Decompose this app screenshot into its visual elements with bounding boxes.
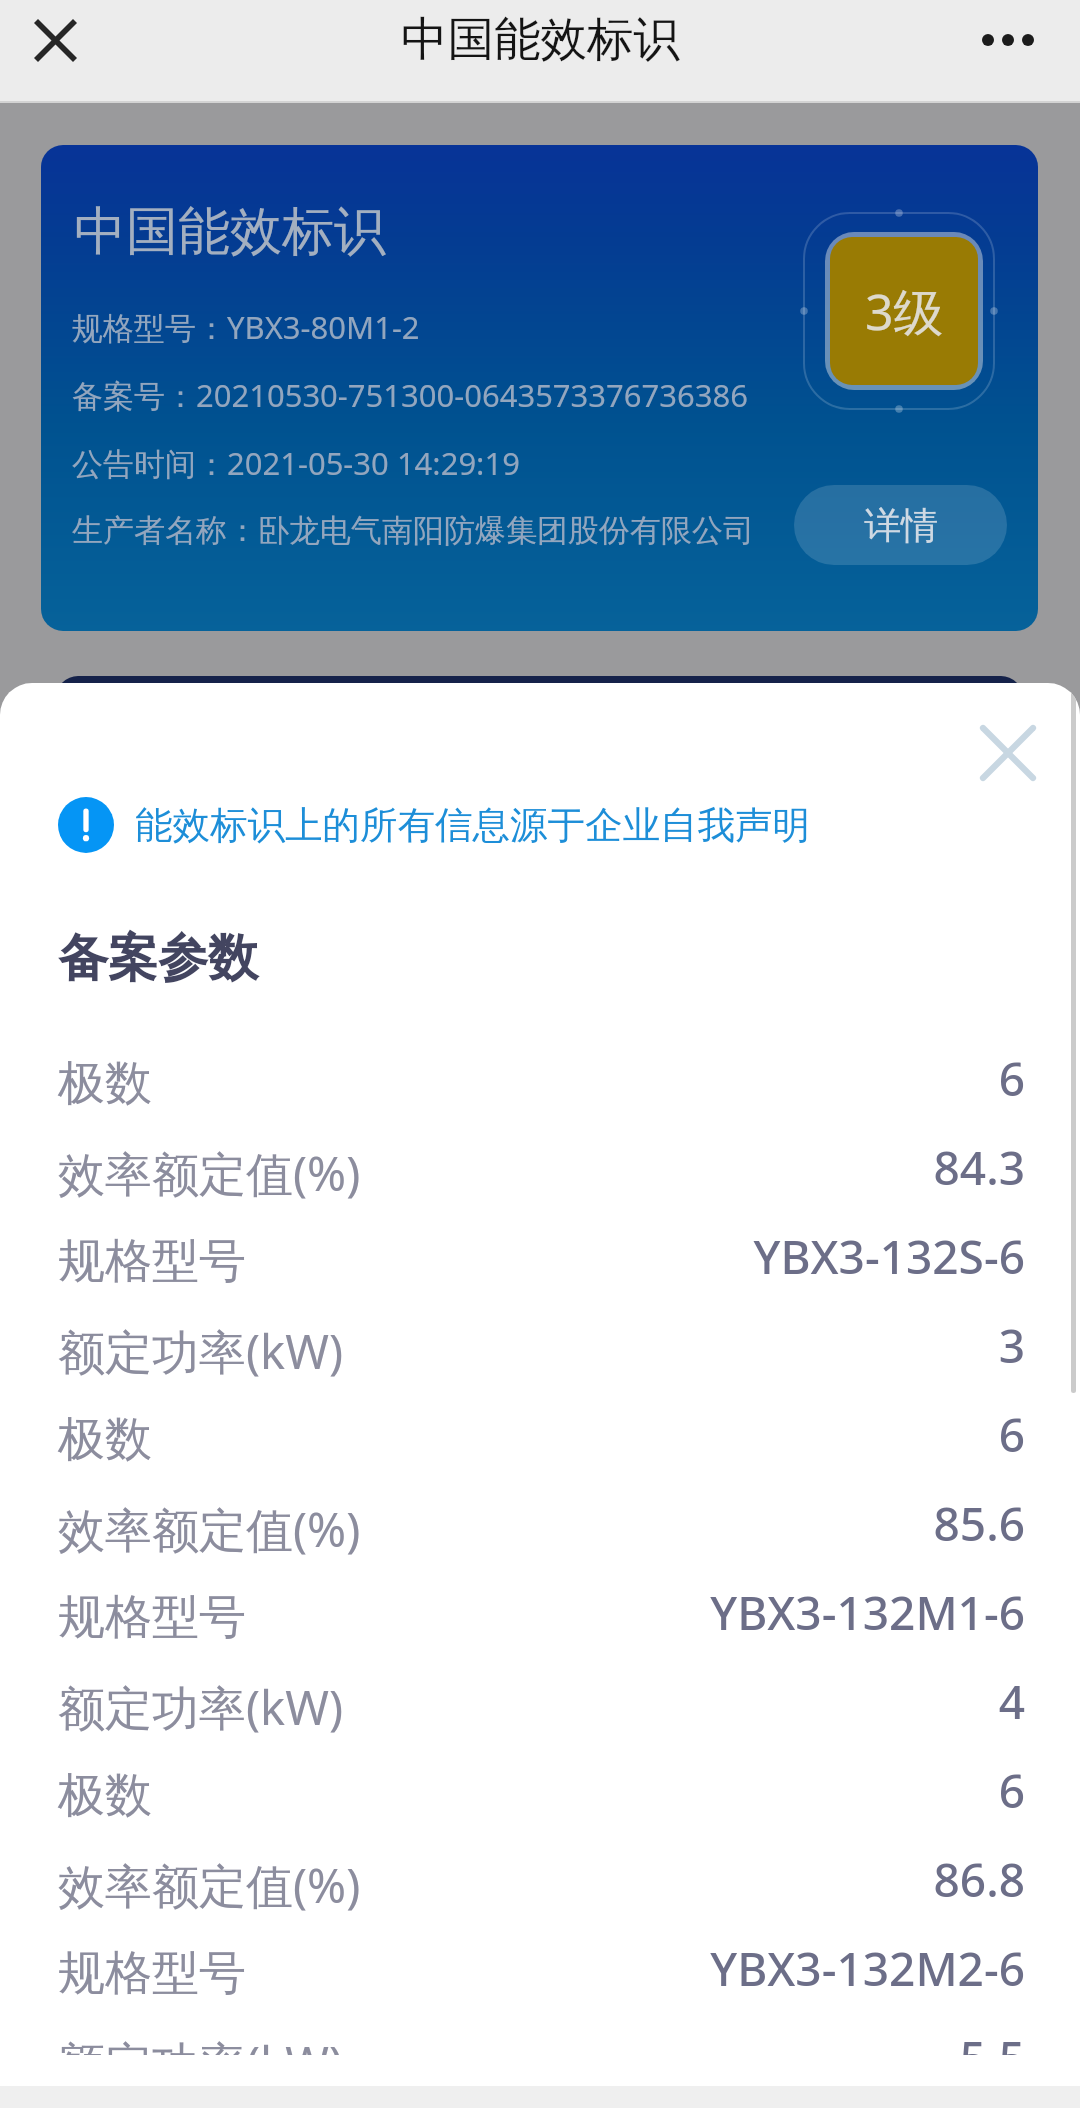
staticText: YBX3-132M1-6	[710, 1581, 1025, 1644]
staticText: 6	[998, 1403, 1025, 1466]
staticText: 85.6	[933, 1492, 1025, 1555]
button[interactable]: More options	[962, 2, 1054, 78]
staticText: 规格型号：YBX3-80M1-2	[72, 306, 420, 348]
button[interactable]: 效率额定值(%)	[0, 1484, 1080, 1573]
button[interactable]: 极数	[0, 1395, 1080, 1484]
staticText: 备案号：20210530-751300-0643573376736386	[72, 374, 748, 416]
staticText: YBX3-132M2-6	[710, 1937, 1025, 2000]
staticText: 中国能效标识	[401, 10, 680, 69]
button[interactable]: 额定功率(kW)	[0, 1306, 1080, 1395]
button[interactable]: 详情	[794, 485, 1007, 565]
staticText: 中国能效标识	[74, 199, 386, 265]
staticText: 效率额定值(%)	[58, 1141, 361, 1205]
staticText: 3	[998, 1314, 1025, 1377]
staticText: 6	[998, 1047, 1025, 1110]
staticText: 规格型号	[58, 1944, 246, 2003]
button[interactable]: 额定功率(kW)	[0, 1662, 1080, 1751]
staticText: 84.3	[933, 1136, 1025, 1199]
staticText: 规格型号	[58, 1588, 246, 1647]
staticText: 公告时间：2021-05-30 14:29:19	[72, 442, 520, 484]
button[interactable]: Close	[16, 1, 94, 79]
staticText: 备案参数	[58, 927, 258, 990]
staticText: 极数	[58, 1054, 152, 1113]
staticText: YBX3-132S-6	[753, 1225, 1025, 1288]
staticText: 3级	[865, 277, 944, 345]
staticText: 额定功率(kW)	[58, 1319, 344, 1383]
button[interactable]: 效率额定值(%)	[0, 1128, 1080, 1217]
staticText: 效率额定值(%)	[58, 1853, 361, 1917]
staticText: 4	[998, 1670, 1025, 1733]
staticText: 极数	[58, 1766, 152, 1825]
staticText: 额定功率(kW)	[58, 2031, 344, 2055]
button[interactable]: 效率额定值(%)	[0, 1840, 1080, 1929]
staticText: 极数	[58, 1410, 152, 1469]
button[interactable]: 极数	[0, 1751, 1080, 1840]
button[interactable]: 规格型号	[0, 1217, 1080, 1306]
staticText: 6	[998, 1759, 1025, 1822]
button[interactable]: Close sheet	[968, 713, 1048, 793]
staticText: 生产者名称：卧龙电气南阳防爆集团股份有限公司	[72, 511, 754, 550]
button[interactable]: 规格型号	[0, 1573, 1080, 1662]
staticText: 效率额定值(%)	[58, 1497, 361, 1561]
button[interactable]: 极数	[0, 1039, 1080, 1128]
button[interactable]: 规格型号	[0, 1929, 1080, 2018]
staticText: 额定功率(kW)	[58, 1675, 344, 1739]
staticText: 详情	[864, 502, 938, 549]
staticText: 5.5	[959, 2026, 1025, 2055]
staticText: 能效标识上的所有信息源于企业自我声明	[135, 802, 810, 849]
staticText: 86.8	[933, 1848, 1025, 1911]
button[interactable]: 额定功率(kW)	[0, 2018, 1080, 2055]
staticText: 规格型号	[58, 1232, 246, 1291]
